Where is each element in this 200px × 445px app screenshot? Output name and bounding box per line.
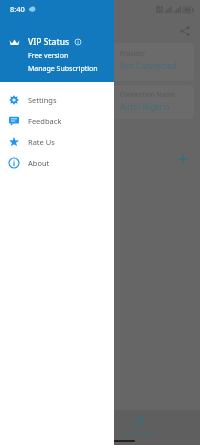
staticText: 8:40 bbox=[10, 4, 25, 14]
staticText: Connection Name bbox=[120, 90, 175, 99]
button[interactable]: Share bbox=[177, 23, 193, 39]
button[interactable]: Connection Name bbox=[112, 85, 194, 119]
button[interactable]: VIP Status bbox=[0, 36, 114, 82]
staticText: Advanced bbox=[125, 429, 155, 438]
staticText: Not Connected bbox=[120, 60, 177, 71]
button[interactable]: About bbox=[0, 152, 114, 173]
button[interactable]: Settings bbox=[0, 89, 114, 110]
button[interactable]: Provider bbox=[112, 43, 194, 81]
staticText: About bbox=[28, 158, 50, 168]
staticText: Manage Subscription bbox=[28, 64, 98, 74]
button[interactable]: Rate Us bbox=[0, 131, 114, 152]
staticText: Rate Us bbox=[28, 137, 55, 147]
staticText: Airtel Nigeria bbox=[120, 101, 170, 112]
staticText: VIP Status bbox=[28, 36, 70, 48]
button[interactable]: Feedback bbox=[0, 110, 114, 131]
staticText: Provider bbox=[120, 49, 146, 58]
staticText: Free version bbox=[28, 51, 69, 61]
staticText: Settings bbox=[28, 95, 57, 105]
button[interactable]: Advanced bbox=[125, 410, 155, 438]
button[interactable]: Add bbox=[172, 148, 194, 170]
staticText: Feedback bbox=[28, 116, 62, 126]
